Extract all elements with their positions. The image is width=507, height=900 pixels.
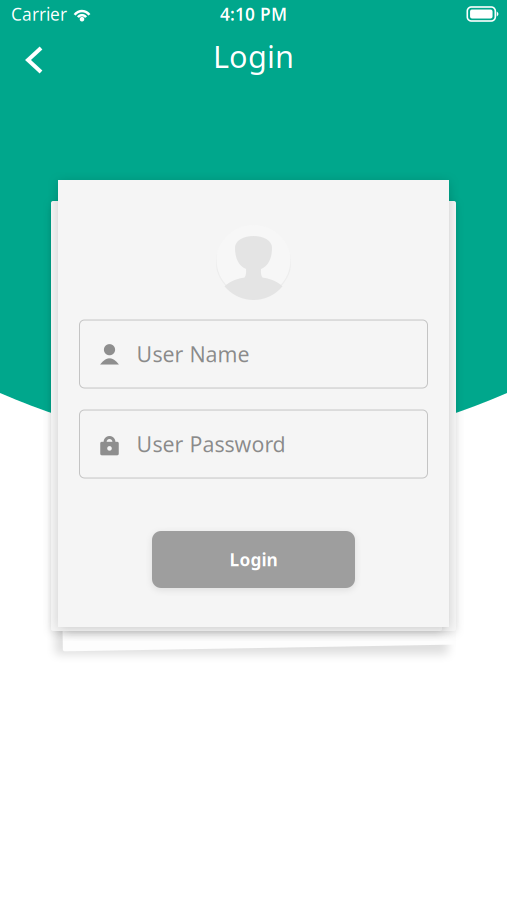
staticText: Carrier <box>11 2 67 25</box>
button[interactable]: Back <box>0 28 61 82</box>
staticText: User Password <box>136 430 285 458</box>
staticText: 4:10 PM <box>220 2 287 25</box>
staticText: Login <box>213 36 294 76</box>
button[interactable]: Login <box>152 531 355 588</box>
staticText: User Name <box>136 340 249 368</box>
staticText: Login <box>229 548 277 571</box>
